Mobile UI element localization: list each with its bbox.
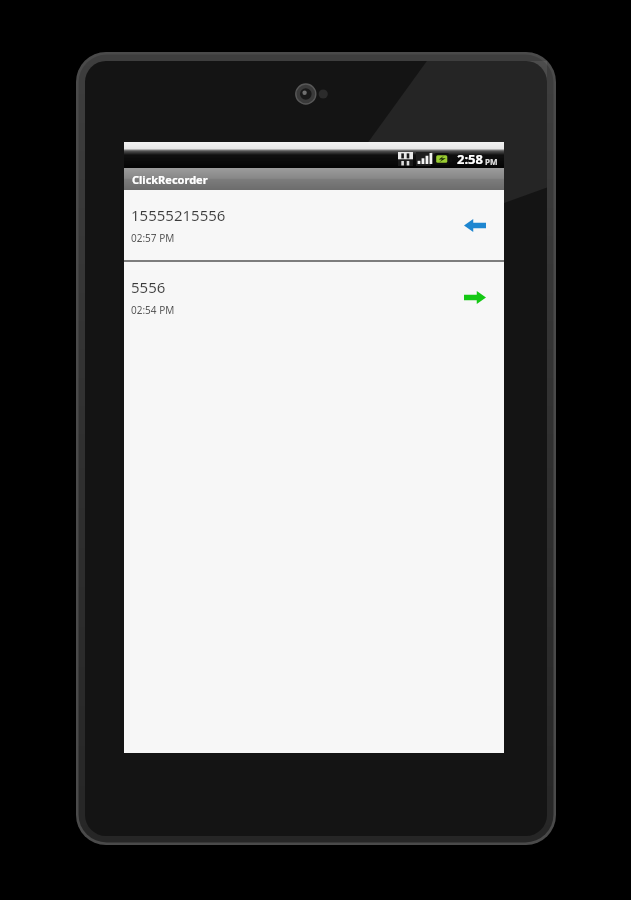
button[interactable]: Outgoing call: [460, 282, 490, 312]
button[interactable]: Incoming call: [460, 210, 490, 240]
staticText: 02:54 PM: [131, 303, 175, 317]
staticText: ClickRecorder: [132, 172, 208, 187]
button[interactable]: 5556: [124, 262, 504, 332]
staticText: 5556: [131, 277, 166, 297]
staticText: PM: [485, 156, 498, 167]
button[interactable]: 15555215556: [124, 190, 504, 260]
staticText: 15555215556: [131, 205, 226, 225]
staticText: 2:58: [457, 150, 483, 168]
staticText: 02:57 PM: [131, 231, 175, 245]
